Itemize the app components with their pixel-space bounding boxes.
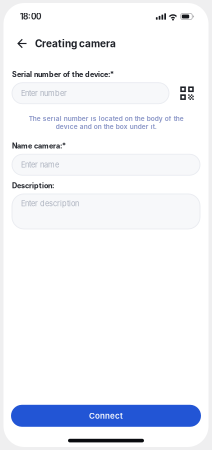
staticText: Serial number of the device:* — [12, 70, 114, 79]
button[interactable]: Back — [14, 35, 30, 51]
staticText: Connect — [89, 411, 123, 421]
staticText: 18:00 — [20, 11, 41, 21]
button[interactable]: Scan QR code — [177, 83, 197, 103]
staticText: Description: — [12, 181, 54, 190]
staticText: Enter name — [21, 160, 59, 169]
staticText: Enter number — [21, 89, 67, 98]
staticText: Name camera:* — [12, 141, 66, 150]
staticText: Enter description — [21, 199, 79, 208]
staticText: The serial number is located on the body… — [28, 115, 183, 130]
button[interactable]: Connect — [11, 405, 201, 427]
staticText: Creating camera — [35, 37, 116, 50]
